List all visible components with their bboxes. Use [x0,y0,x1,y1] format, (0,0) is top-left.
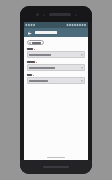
button[interactable] [27,40,44,45]
button[interactable] [27,51,85,58]
button[interactable] [27,77,85,84]
button[interactable]: Navigate up [25,29,33,37]
button[interactable] [27,64,85,71]
